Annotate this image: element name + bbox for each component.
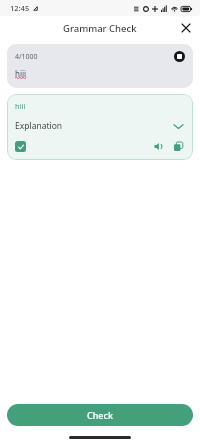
button[interactable]: Explanation bbox=[15, 119, 185, 133]
button[interactable]: 4/1000 bbox=[7, 44, 193, 88]
button[interactable]: hiii bbox=[7, 94, 193, 160]
button[interactable]: Accept suggestion bbox=[15, 141, 26, 152]
staticText: hiii bbox=[15, 68, 27, 79]
staticText: 12:45 bbox=[10, 3, 30, 13]
staticText: hiii bbox=[15, 101, 26, 111]
button[interactable]: Close bbox=[176, 18, 196, 38]
other: Expand explanation bbox=[171, 119, 185, 133]
button[interactable]: Copy bbox=[171, 139, 185, 153]
button[interactable]: Check bbox=[7, 404, 193, 426]
staticText: 4/1000 bbox=[15, 52, 38, 62]
button[interactable]: Listen bbox=[151, 139, 165, 153]
staticText: Grammar Check bbox=[63, 22, 137, 35]
staticText: Check bbox=[87, 409, 113, 421]
button[interactable]: Clear text bbox=[174, 51, 185, 62]
staticText: Explanation bbox=[15, 120, 63, 132]
